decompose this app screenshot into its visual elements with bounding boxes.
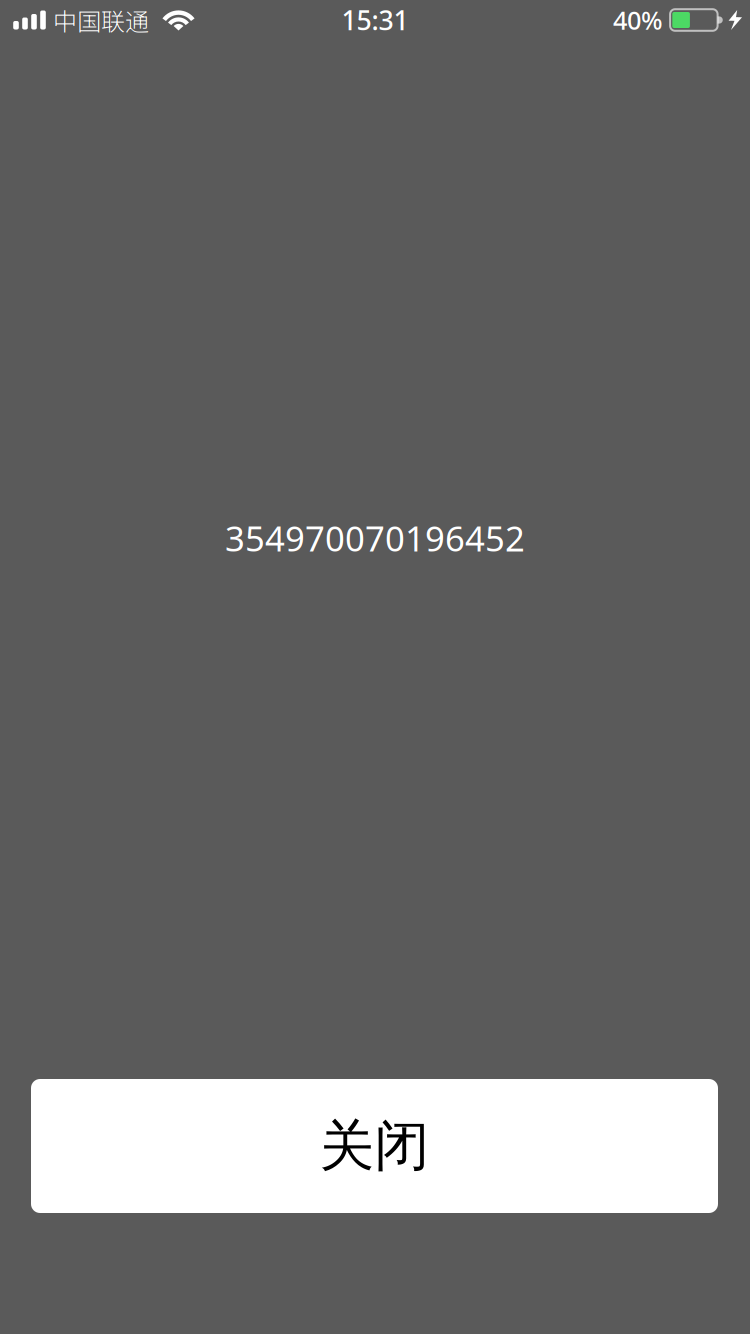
staticText: 关闭 <box>319 1112 429 1179</box>
staticText: 40% <box>613 3 663 37</box>
button[interactable]: 关闭 <box>31 1079 718 1213</box>
staticText: 354970070196452 <box>225 515 525 561</box>
staticText: 15:31 <box>341 2 408 38</box>
staticText: 中国联通 <box>53 3 149 37</box>
